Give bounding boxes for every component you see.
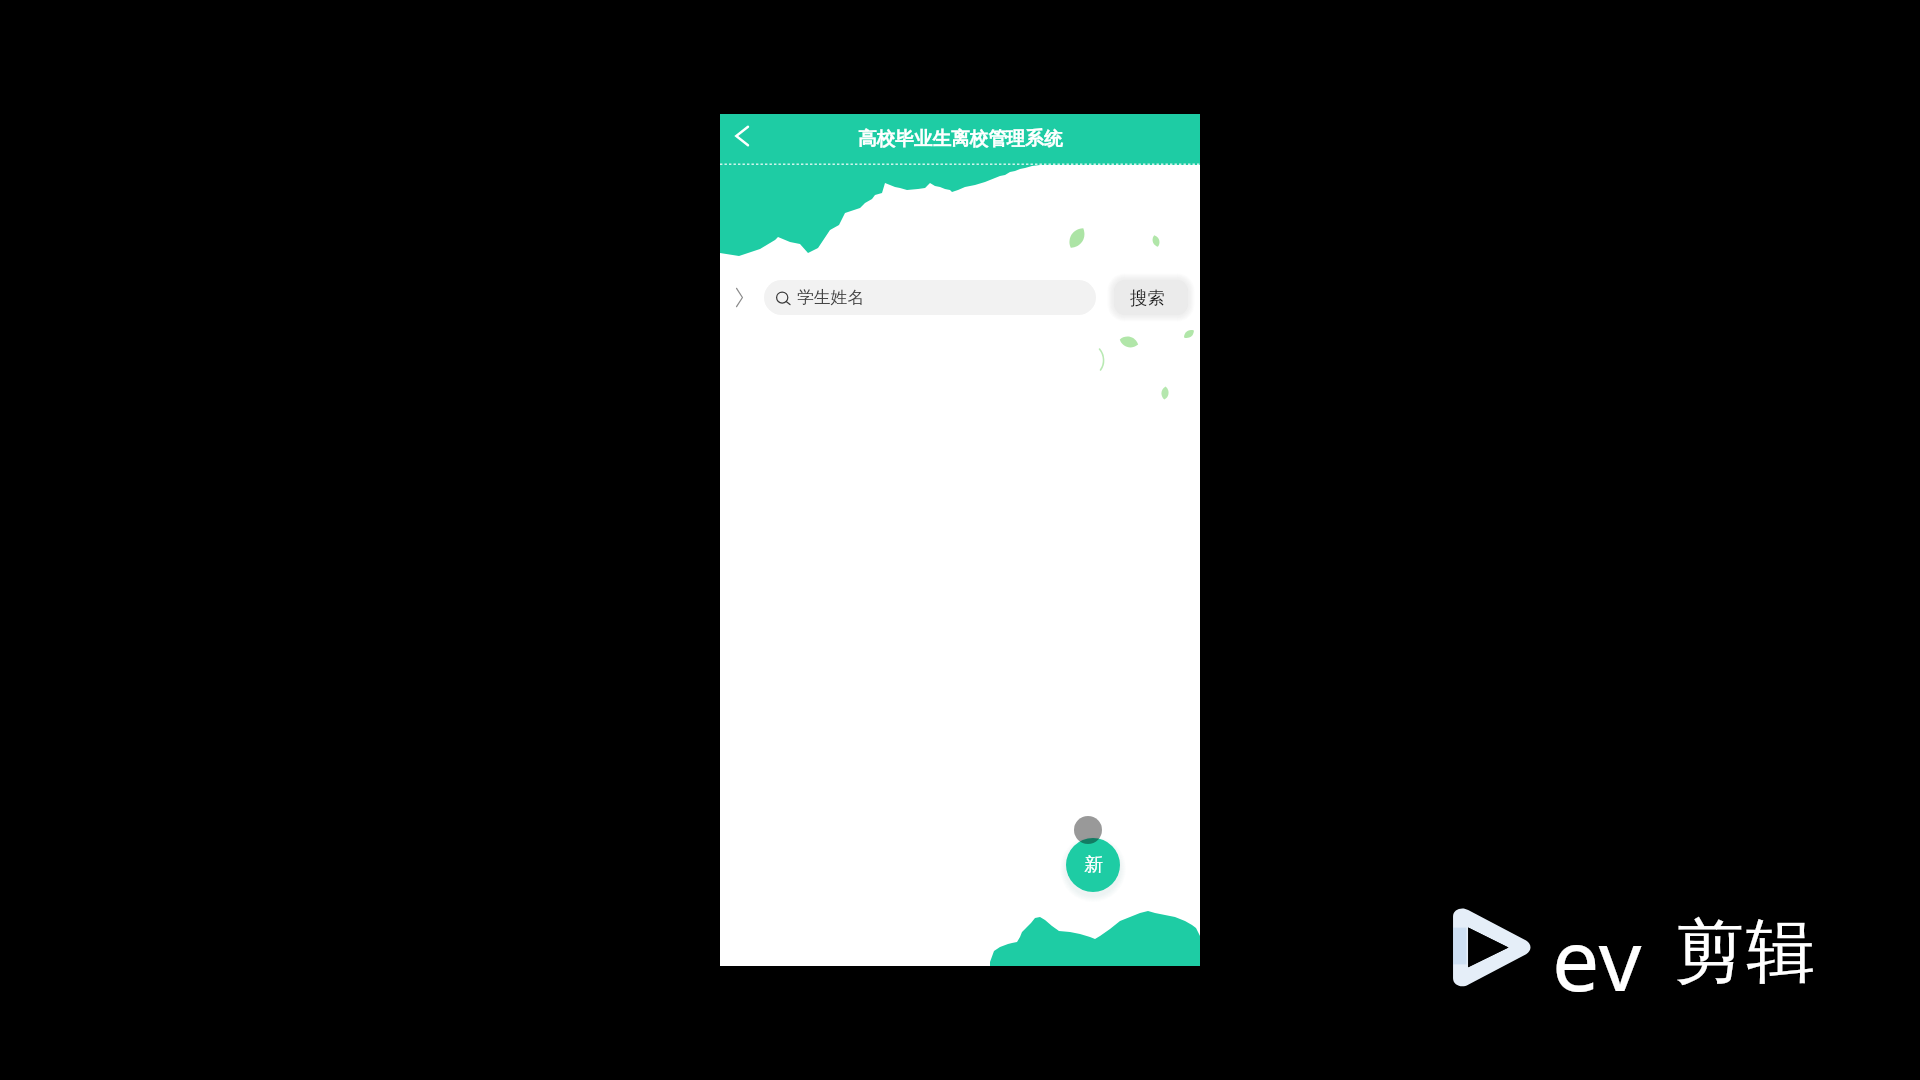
- staticText: 学生姓名: [797, 287, 865, 308]
- staticText: 剪辑: [1674, 909, 1816, 996]
- button[interactable]: Expand: [721, 279, 757, 315]
- staticText: ev: [1552, 901, 1643, 1015]
- button[interactable]: 新: [1066, 838, 1120, 892]
- button[interactable]: 学生姓名: [764, 280, 1096, 315]
- staticText: 高校毕业生离校管理系统: [858, 127, 1063, 150]
- button[interactable]: Back: [721, 114, 761, 165]
- staticText: 新: [1084, 853, 1103, 877]
- staticText: 搜索: [1130, 287, 1165, 309]
- button[interactable]: 搜索: [1114, 280, 1188, 315]
